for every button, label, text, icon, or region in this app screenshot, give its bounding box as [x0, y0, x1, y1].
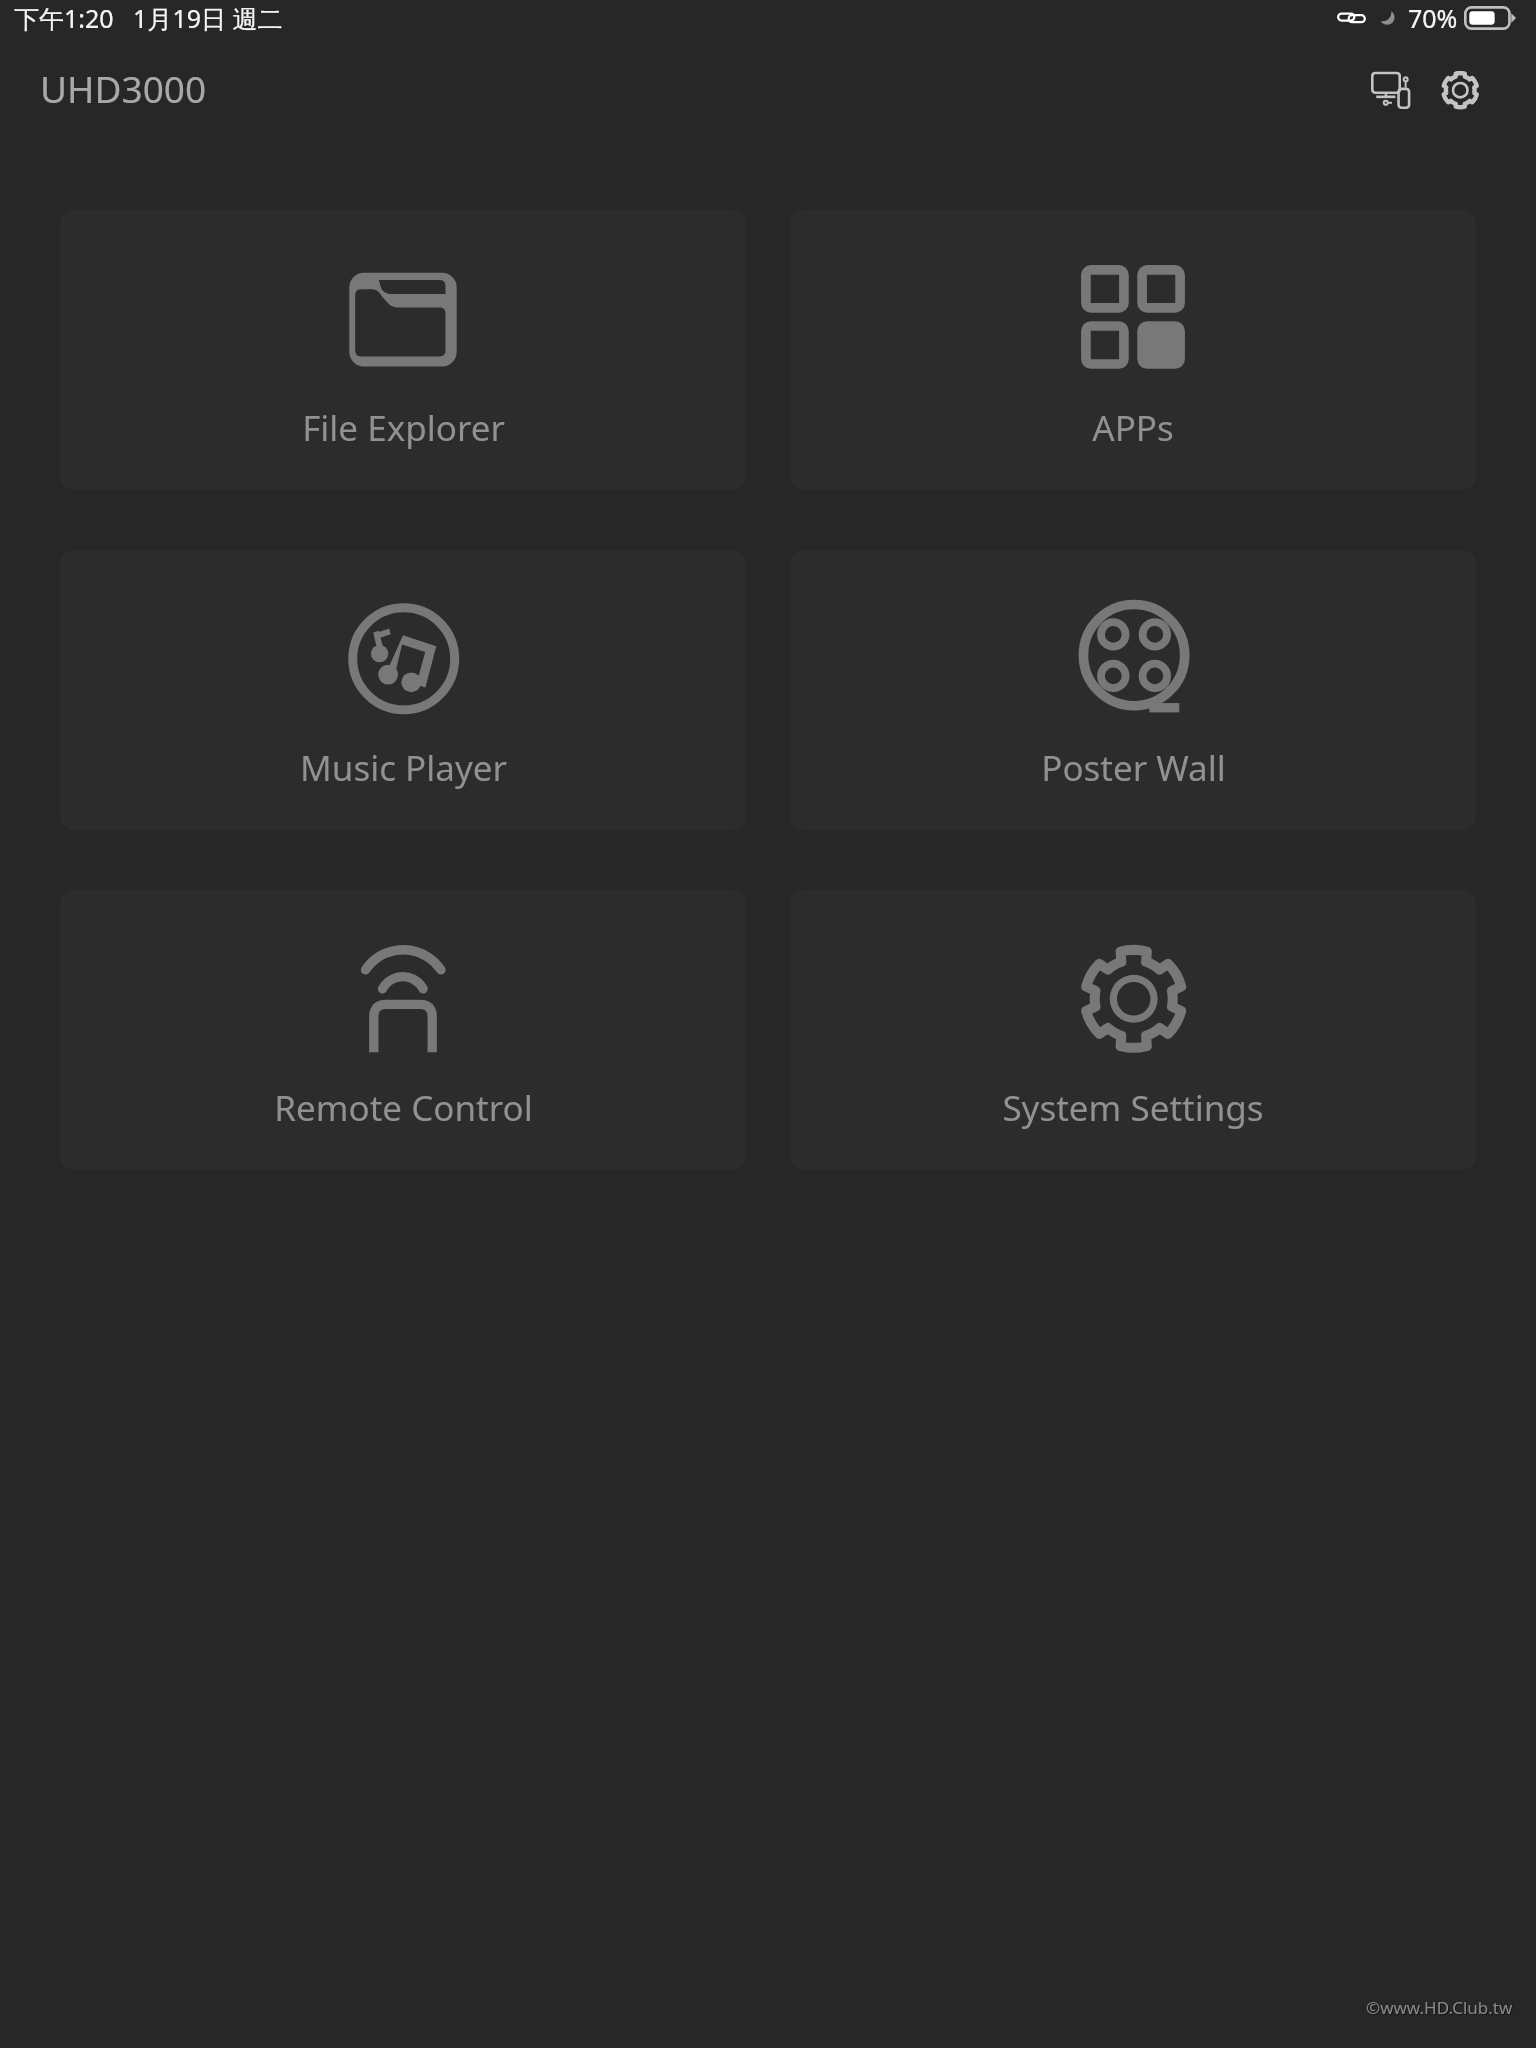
staticText: ©www.HD.Club.tw	[1367, 1997, 1514, 2020]
staticText: 下午1:20 1月19日 週二	[14, 1, 283, 35]
staticText: File Explorer	[302, 404, 505, 452]
button[interactable]: File Explorer	[60, 210, 746, 490]
staticText: Remote Control	[274, 1084, 533, 1132]
staticText: ©www.HD.Club.tw	[1366, 1996, 1513, 2019]
staticText: Poster Wall	[1041, 744, 1226, 792]
button[interactable]: Poster Wall	[790, 550, 1476, 830]
staticText: UHD3000	[40, 63, 207, 113]
staticText: System Settings	[1002, 1084, 1264, 1132]
button[interactable]: Remote Control	[60, 890, 746, 1170]
staticText: Music Player	[300, 744, 507, 792]
button[interactable]: Music Player	[60, 550, 746, 830]
button[interactable]: Settings	[1426, 54, 1494, 122]
staticText: APPs	[1092, 404, 1174, 452]
button[interactable]: Cast to device	[1358, 54, 1426, 122]
staticText: 70%	[1408, 1, 1458, 35]
button[interactable]: System Settings	[790, 890, 1476, 1170]
button[interactable]: APPs	[790, 210, 1476, 490]
